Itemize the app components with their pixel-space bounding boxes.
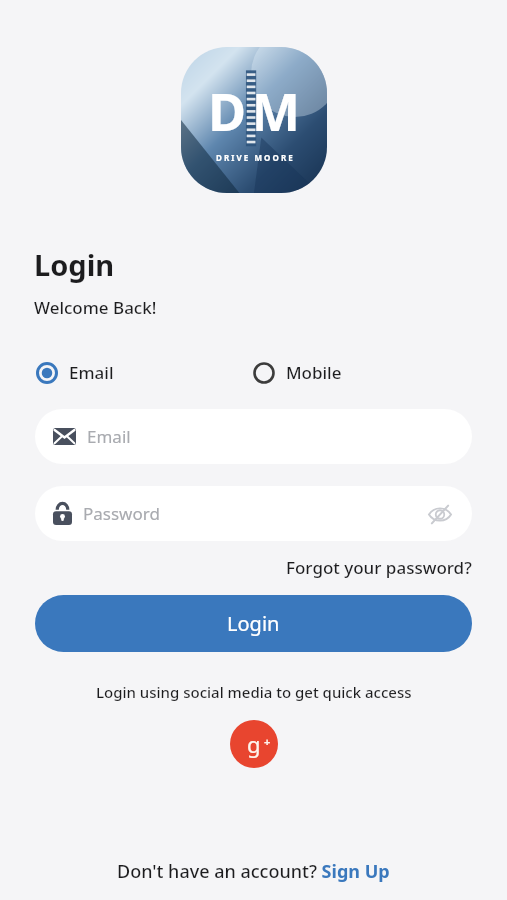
button[interactable]: Login bbox=[35, 595, 472, 652]
button[interactable]: Don't have an account? Sign Up bbox=[0, 859, 507, 900]
staticText: D R I V E M O O R E bbox=[216, 152, 293, 163]
button[interactable]: Forgot your password? bbox=[284, 554, 474, 581]
staticText: + bbox=[264, 734, 271, 749]
button[interactable]: Email bbox=[36, 361, 253, 384]
staticText: g bbox=[247, 729, 261, 759]
staticText: Forgot your password? bbox=[286, 556, 472, 579]
button[interactable]: Sign in with Google Plus bbox=[230, 720, 278, 768]
staticText: D bbox=[208, 75, 247, 146]
staticText: Password bbox=[83, 502, 160, 525]
button[interactable]: Show password bbox=[426, 500, 454, 528]
staticText: Login bbox=[227, 610, 280, 637]
staticText: Email bbox=[69, 361, 114, 384]
staticText: Mobile bbox=[286, 361, 342, 384]
staticText: Email bbox=[87, 425, 131, 448]
button[interactable]: Drive Moore logo bbox=[181, 47, 327, 193]
staticText: Login bbox=[34, 245, 115, 284]
staticText: Don't have an account? Sign Up bbox=[117, 859, 390, 884]
staticText: M bbox=[251, 75, 301, 146]
staticText: Login using social media to get quick ac… bbox=[96, 682, 412, 702]
button[interactable]: Mobile bbox=[253, 361, 471, 384]
staticText: Welcome Back! bbox=[34, 296, 157, 319]
button[interactable]: Password bbox=[35, 486, 472, 541]
button[interactable]: Email bbox=[35, 409, 472, 464]
